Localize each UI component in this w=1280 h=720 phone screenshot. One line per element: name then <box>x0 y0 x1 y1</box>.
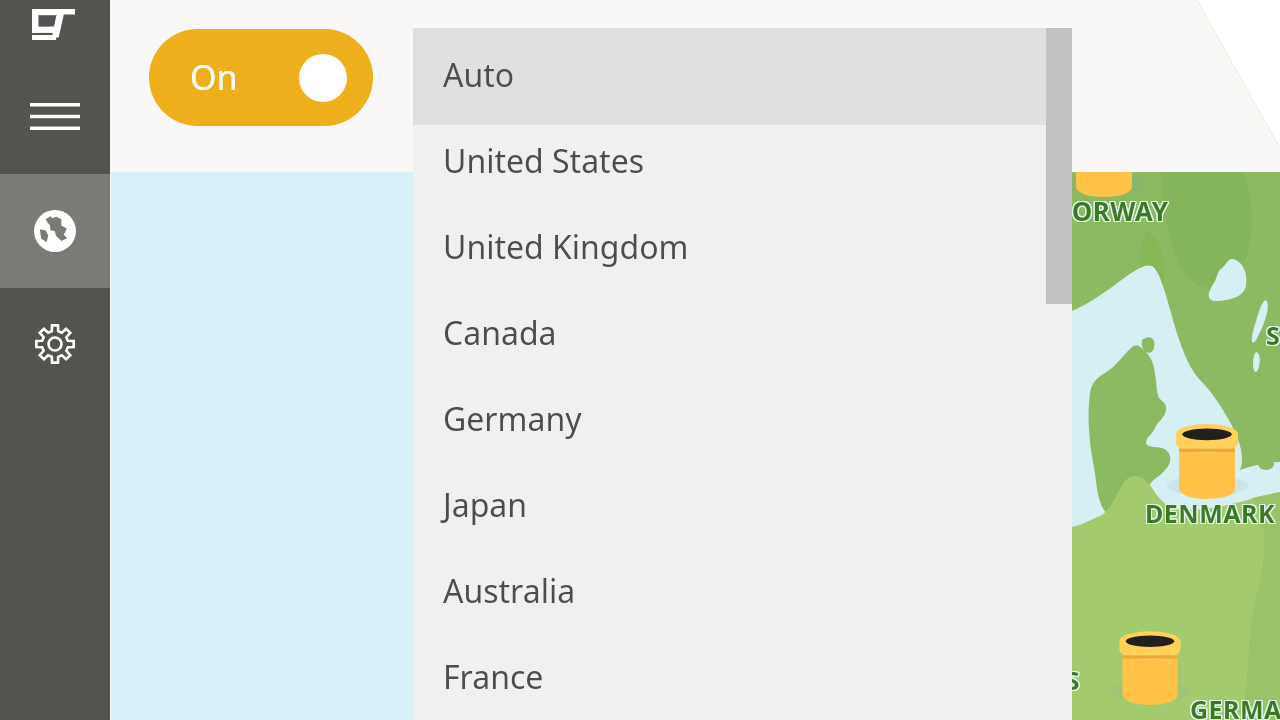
staticText: S <box>1266 319 1280 353</box>
staticText: GERMANY <box>1189 693 1280 720</box>
button[interactable]: Auto <box>413 28 1072 125</box>
staticText: Australia <box>443 569 576 613</box>
button[interactable]: Home <box>0 0 110 58</box>
button[interactable]: Menu <box>0 58 110 174</box>
staticText: Canada <box>443 311 557 355</box>
staticText: NORWAY <box>1049 194 1168 229</box>
staticText: GERMANY <box>1189 692 1280 720</box>
staticText: DS <box>1046 663 1080 697</box>
staticText: GERMANY <box>1190 692 1280 720</box>
staticText: DS <box>1048 663 1082 697</box>
staticText: DENMARK <box>1144 497 1275 531</box>
button[interactable]: Locations <box>0 174 110 288</box>
staticText: DS <box>1046 664 1080 698</box>
button[interactable]: On <box>149 29 373 126</box>
staticText: United States <box>443 139 645 183</box>
staticText: DENMARK <box>1144 496 1275 530</box>
staticText: GERMANY <box>1191 691 1280 720</box>
staticText: NORWAY <box>1050 194 1169 229</box>
staticText: NORWAY <box>1051 193 1170 228</box>
staticText: NORWAY <box>1050 193 1169 228</box>
staticText: France <box>443 655 544 699</box>
staticText: DS <box>1047 663 1081 697</box>
staticText: DENMARK <box>1146 496 1277 530</box>
button[interactable]: France <box>413 641 1072 720</box>
button[interactable]: Australia <box>413 555 1072 641</box>
button[interactable]: Settings <box>0 288 110 400</box>
staticText: DS <box>1046 662 1080 696</box>
staticText: S <box>1267 318 1280 352</box>
staticText: S <box>1267 319 1280 353</box>
staticText: DENMARK <box>1145 497 1276 531</box>
staticText: DENMARK <box>1146 495 1277 529</box>
staticText: United Kingdom <box>443 225 689 269</box>
staticText: GERMANY <box>1191 693 1280 720</box>
button[interactable]: Germany <box>413 383 1072 469</box>
button[interactable]: United Kingdom <box>413 211 1072 297</box>
staticText: Germany <box>443 397 582 441</box>
staticText: DENMARK <box>1144 495 1275 529</box>
staticText: GERMANY <box>1191 692 1280 720</box>
staticText: GERMANY <box>1190 693 1280 720</box>
staticText: DENMARK <box>1146 497 1277 531</box>
staticText: S <box>1266 318 1280 352</box>
staticText: GERMANY <box>1189 691 1280 720</box>
button[interactable]: United States <box>413 125 1072 211</box>
staticText: DENMARK <box>1145 496 1276 530</box>
staticText: NORWAY <box>1051 192 1170 227</box>
staticText: NORWAY <box>1051 194 1170 229</box>
staticText: NORWAY <box>1049 193 1168 228</box>
staticText: S <box>1265 319 1280 353</box>
staticText: NORWAY <box>1050 192 1169 227</box>
staticText: S <box>1266 317 1280 351</box>
button[interactable]: Japan <box>413 469 1072 555</box>
staticText: DS <box>1047 664 1081 698</box>
staticText: S <box>1265 318 1280 352</box>
staticText: S <box>1265 317 1280 351</box>
staticText: DS <box>1048 664 1082 698</box>
staticText: DENMARK <box>1145 495 1276 529</box>
staticText: Japan <box>443 483 528 527</box>
staticText: DS <box>1047 662 1081 696</box>
staticText: S <box>1267 317 1280 351</box>
staticText: On <box>190 54 238 100</box>
button[interactable]: Canada <box>413 297 1072 383</box>
staticText: GERMANY <box>1190 691 1280 720</box>
staticText: NORWAY <box>1049 192 1168 227</box>
staticText: Auto <box>443 53 515 97</box>
staticText: DS <box>1048 662 1082 696</box>
